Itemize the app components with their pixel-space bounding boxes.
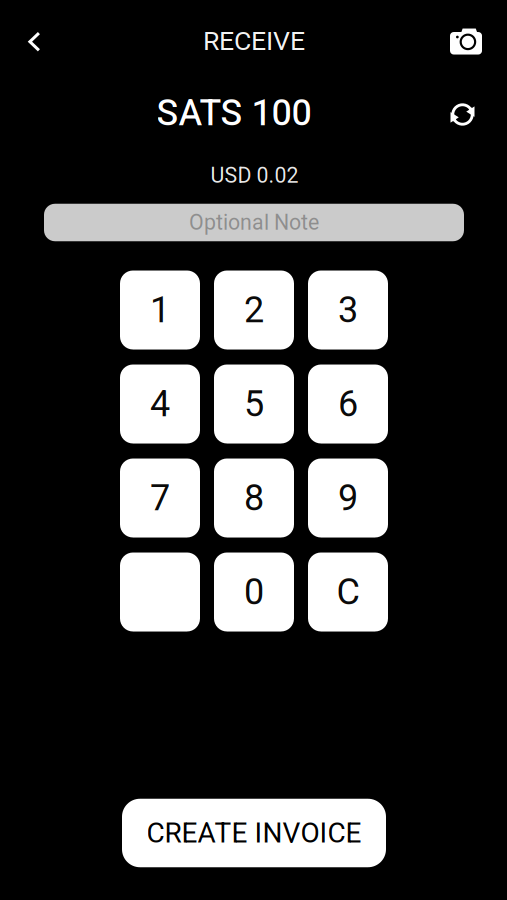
button[interactable]: 9 — [308, 458, 388, 537]
button[interactable]: Scan QR code — [443, 18, 489, 64]
button[interactable]: 2 — [214, 270, 294, 349]
button[interactable]: 8 — [214, 458, 294, 537]
button[interactable]: 5 — [214, 364, 294, 443]
button[interactable]: CREATE INVOICE — [122, 799, 386, 867]
button[interactable]: 7 — [120, 458, 200, 537]
staticText: 9 — [338, 477, 358, 519]
button[interactable]: 4 — [120, 364, 200, 443]
staticText: RECEIVE — [203, 25, 305, 57]
staticText: 2 — [244, 289, 264, 331]
staticText: 5 — [244, 383, 264, 425]
staticText: 1 — [150, 289, 170, 331]
staticText: SATS 100 — [156, 92, 311, 134]
button[interactable]: Back — [11, 19, 57, 65]
staticText: 0 — [244, 571, 264, 613]
staticText: 8 — [244, 477, 264, 519]
button[interactable]: 1 — [120, 270, 200, 349]
staticText: USD 0.02 — [210, 163, 298, 188]
button[interactable]: Blank — [120, 552, 200, 631]
staticText: Optional Note — [189, 210, 319, 235]
staticText: 7 — [150, 477, 170, 519]
button[interactable]: 0 — [214, 552, 294, 631]
button[interactable]: Optional Note — [44, 204, 464, 241]
staticText: CREATE INVOICE — [146, 817, 361, 849]
button[interactable]: Refresh — [440, 92, 484, 136]
staticText: 4 — [150, 383, 170, 425]
button[interactable]: C — [308, 552, 388, 631]
staticText: 3 — [338, 289, 358, 331]
button[interactable]: 3 — [308, 270, 388, 349]
staticText: C — [336, 571, 359, 613]
button[interactable]: 6 — [308, 364, 388, 443]
staticText: 6 — [338, 383, 358, 425]
